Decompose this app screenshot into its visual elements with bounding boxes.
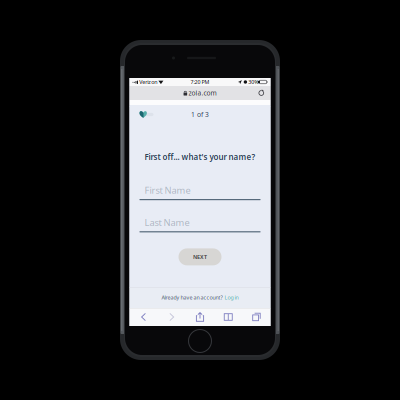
button[interactable]: Tabs (246, 307, 266, 327)
staticText: Last Name (144, 216, 189, 229)
button[interactable]: Reload (255, 87, 267, 99)
staticText: NEXT (193, 253, 207, 260)
button[interactable]: NEXT (178, 248, 221, 265)
button[interactable]: Share (190, 307, 210, 327)
staticText: zola.com (188, 89, 216, 97)
button[interactable]: Back (133, 307, 153, 327)
staticText: Verizon (139, 78, 157, 86)
staticText: First Name (144, 184, 190, 196)
staticText: First off... what's your name? (144, 152, 255, 162)
button[interactable]: Bookmarks (218, 307, 238, 327)
staticText: Log in (224, 294, 238, 301)
button[interactable]: Log in (224, 294, 238, 301)
button[interactable]: Forward (162, 307, 182, 327)
staticText: Already have an account? (161, 294, 222, 301)
staticText: 1 of 3 (191, 110, 209, 119)
staticText: 7:20 PM (190, 78, 209, 86)
staticText: 30% (248, 78, 258, 86)
